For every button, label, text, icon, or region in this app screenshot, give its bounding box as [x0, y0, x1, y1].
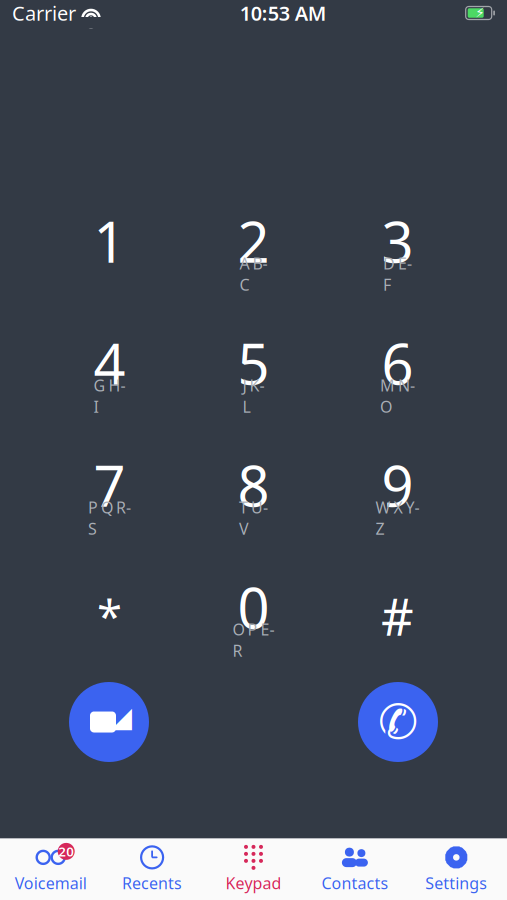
- staticText: Recents: [122, 872, 182, 894]
- staticText: Keypad: [225, 872, 281, 894]
- staticText: PQRS: [88, 497, 131, 539]
- button[interactable]: *: [49, 576, 169, 656]
- button[interactable]: 7: [49, 454, 169, 534]
- button[interactable]: 20: [0, 839, 101, 900]
- staticText: 0: [237, 570, 269, 644]
- button[interactable]: 2: [193, 210, 313, 290]
- staticText: 6: [381, 326, 413, 400]
- staticText: 5: [237, 326, 269, 400]
- staticText: Settings: [425, 872, 487, 894]
- staticText: Voicemail: [15, 872, 87, 894]
- staticText: 8: [237, 448, 269, 522]
- staticText: 1: [93, 204, 125, 278]
- button[interactable]: 8: [193, 454, 313, 534]
- button[interactable]: Settings: [406, 839, 507, 900]
- button[interactable]: 5: [193, 332, 313, 412]
- staticText: 20: [58, 842, 74, 860]
- staticText: 7: [93, 448, 125, 522]
- button[interactable]: 3: [337, 210, 457, 290]
- button[interactable]: 0: [193, 576, 313, 656]
- staticText: 4: [93, 326, 125, 400]
- staticText: MNO: [380, 375, 415, 417]
- staticText: 3: [381, 204, 413, 278]
- button[interactable]: Recents: [101, 839, 203, 900]
- staticText: ✆: [378, 695, 418, 749]
- staticText: 10:53 AM: [240, 0, 327, 26]
- staticText: DEF: [383, 253, 412, 295]
- button[interactable]: 1: [49, 210, 169, 290]
- staticText: ◤: [110, 706, 132, 738]
- staticText: Carrier: [12, 0, 76, 26]
- button[interactable]: Contacts: [304, 839, 406, 900]
- staticText: 2: [237, 204, 269, 278]
- staticText: ABC: [239, 253, 267, 295]
- staticText: TUV: [239, 497, 268, 539]
- button[interactable]: Call: [358, 682, 438, 762]
- button[interactable]: Keypad: [203, 839, 304, 900]
- staticText: WXYZ: [375, 497, 419, 539]
- button[interactable]: 4: [49, 332, 169, 412]
- button[interactable]: 9: [337, 454, 457, 534]
- staticText: OPER: [232, 619, 274, 661]
- staticText: 9: [381, 448, 413, 522]
- staticText: GHI: [93, 375, 125, 417]
- staticText: Contacts: [321, 872, 388, 894]
- button[interactable]: 6: [337, 332, 457, 412]
- staticText: JKL: [242, 375, 264, 417]
- staticText: *: [97, 586, 122, 646]
- staticText: ⚡︎: [475, 5, 484, 20]
- staticText: #: [381, 582, 414, 650]
- button[interactable]: #: [337, 576, 457, 656]
- button[interactable]: FaceTime video call: [69, 682, 149, 762]
